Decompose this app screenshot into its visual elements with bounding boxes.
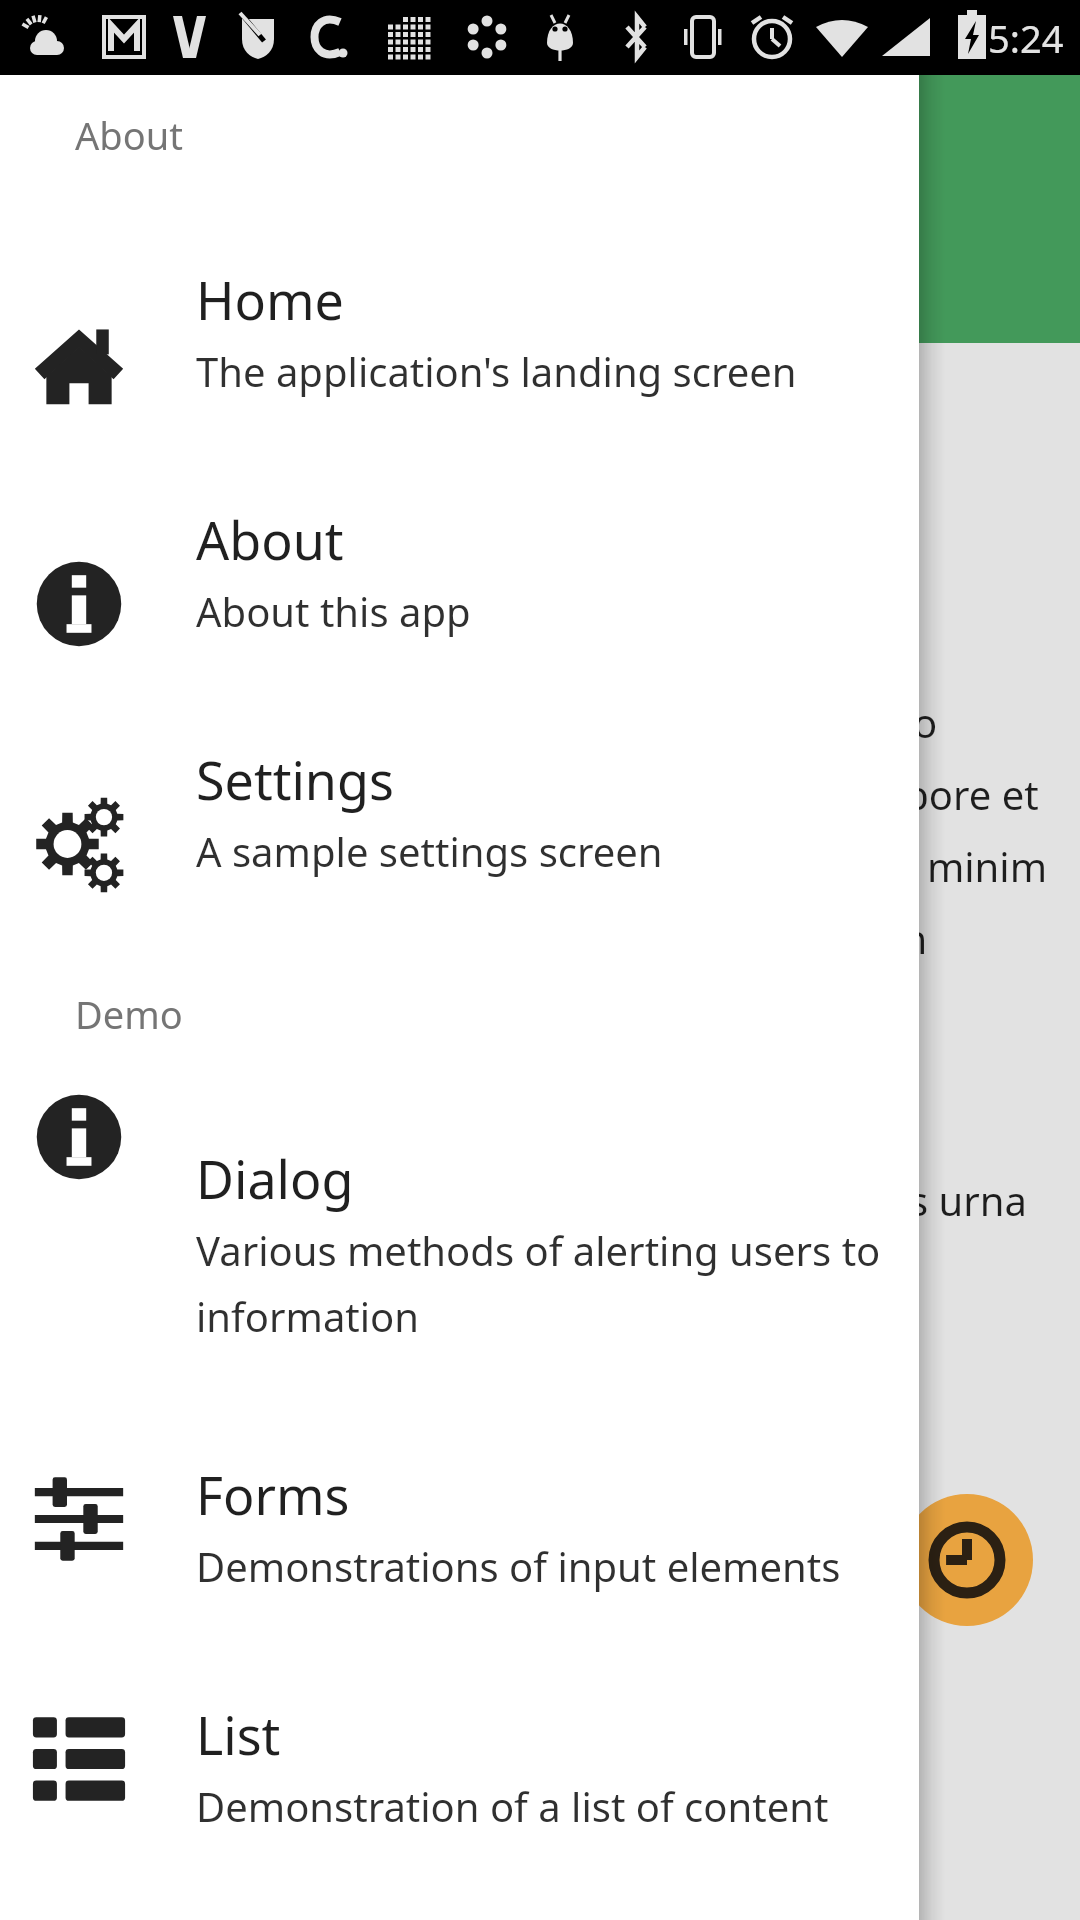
staticText: About xyxy=(75,109,183,161)
button[interactable]: Schedule xyxy=(901,1494,1033,1626)
staticText: Home xyxy=(196,264,344,335)
staticText: Nulla facilisi morbi tempus iaculis urna… xyxy=(300,1173,1060,1299)
staticText: information xyxy=(196,1289,420,1343)
button[interactable]: About xyxy=(0,498,919,698)
staticText: Demo xyxy=(75,988,183,1040)
button[interactable]: Settings xyxy=(0,738,919,938)
staticText: 5:24 xyxy=(988,12,1064,64)
staticText: Dialog xyxy=(196,1143,354,1214)
button[interactable]: Home xyxy=(0,258,919,458)
staticText: About xyxy=(196,504,344,575)
staticText: List xyxy=(196,1699,281,1770)
button[interactable]: Dialog xyxy=(0,1137,919,1417)
staticText: Settings xyxy=(196,744,394,815)
staticText: Lorem ipsum dolor sit amet, consectetur … xyxy=(300,623,1060,1037)
staticText: A sample settings screen xyxy=(196,824,663,878)
staticText: Demonstration of a list of content xyxy=(196,1779,829,1833)
staticText: Forms xyxy=(196,1459,350,1530)
staticText: The application's landing screen xyxy=(196,344,797,398)
staticText: Various methods of alerting users to xyxy=(196,1223,881,1277)
staticText: About this app xyxy=(196,584,471,638)
staticText: Demonstrations of input elements xyxy=(196,1539,841,1593)
button[interactable]: Forms xyxy=(0,1453,919,1653)
button[interactable]: List xyxy=(0,1693,919,1893)
